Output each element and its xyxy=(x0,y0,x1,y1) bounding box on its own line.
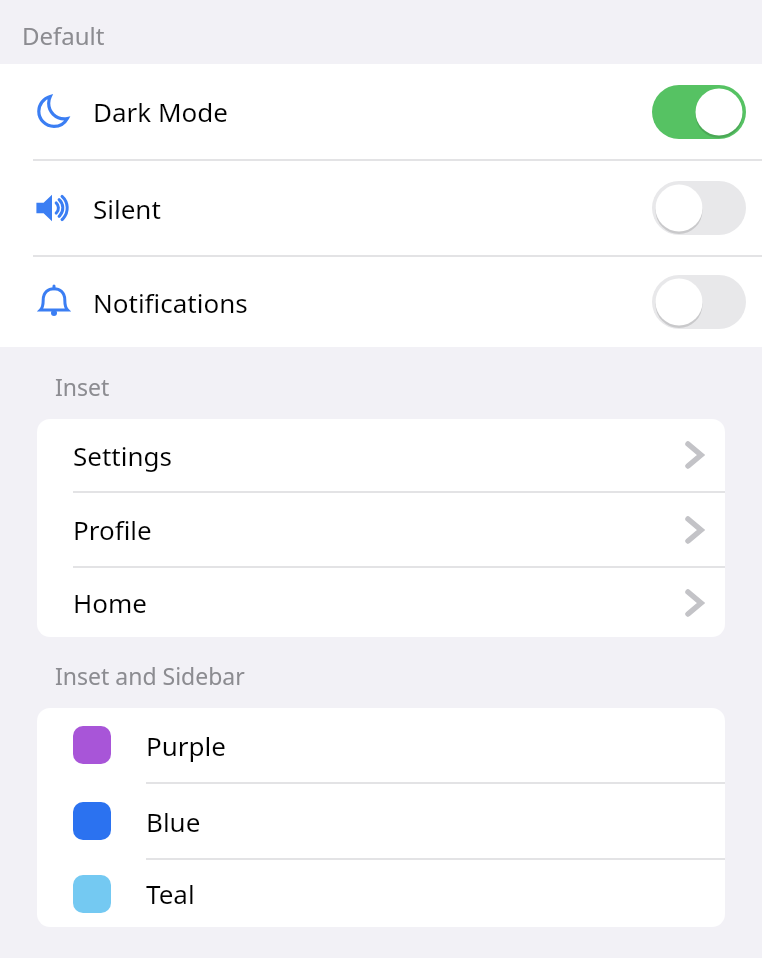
staticText: Inset xyxy=(55,371,110,402)
button[interactable]: Profile xyxy=(37,493,725,566)
staticText: Notifications xyxy=(93,285,248,320)
button[interactable]: Blue xyxy=(37,784,725,858)
staticText: Blue xyxy=(146,804,201,839)
staticText: Dark Mode xyxy=(93,94,228,129)
button[interactable]: Toggle on xyxy=(652,85,746,139)
button[interactable]: Silent xyxy=(0,161,762,255)
staticText: Home xyxy=(73,585,147,620)
staticText: Teal xyxy=(146,876,195,911)
button[interactable]: Settings xyxy=(37,419,725,491)
other: Silent xyxy=(34,188,74,228)
button[interactable]: Teal xyxy=(37,860,725,927)
staticText: Default xyxy=(22,19,105,52)
staticText: Silent xyxy=(93,191,161,226)
staticText: Profile xyxy=(73,512,152,547)
staticText: Inset and Sidebar xyxy=(55,660,245,691)
button[interactable]: Toggle off xyxy=(652,181,746,235)
staticText: Settings xyxy=(73,438,172,473)
other: Notifications xyxy=(34,282,74,322)
button[interactable]: Notifications xyxy=(0,257,762,347)
other: Dark mode xyxy=(35,93,73,131)
button[interactable]: Home xyxy=(37,568,725,637)
button[interactable]: Dark mode xyxy=(0,64,762,159)
button[interactable]: Purple xyxy=(37,708,725,782)
staticText: Purple xyxy=(146,728,226,763)
button[interactable]: Toggle off xyxy=(652,275,746,329)
